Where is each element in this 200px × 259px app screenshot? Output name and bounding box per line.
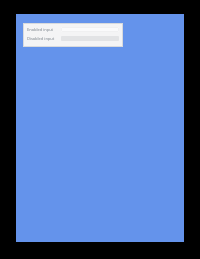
staticText: Disabled input: [27, 36, 57, 41]
button[interactable]: Disabled input: [27, 35, 119, 42]
staticText: Enabled input: [27, 27, 57, 32]
button[interactable]: Enabled input: [27, 26, 119, 33]
button[interactable]: Enabled input: [23, 23, 123, 47]
button[interactable]: Enabled input field: [61, 27, 119, 32]
